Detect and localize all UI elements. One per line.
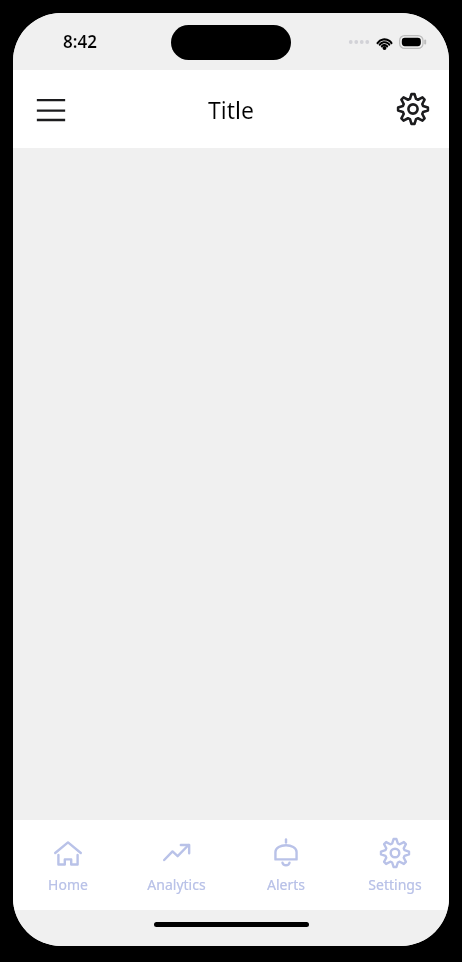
button[interactable]: Settings bbox=[340, 820, 449, 910]
button[interactable]: Settings bbox=[387, 83, 439, 135]
button[interactable]: Alerts bbox=[231, 820, 340, 910]
staticText: 8:42 bbox=[63, 30, 97, 53]
staticText: Home bbox=[48, 875, 88, 894]
staticText: Alerts bbox=[267, 875, 305, 894]
staticText: Settings bbox=[368, 875, 422, 894]
staticText: Analytics bbox=[147, 875, 206, 894]
button[interactable]: Analytics bbox=[122, 820, 231, 910]
button[interactable]: Menu bbox=[25, 83, 77, 135]
button[interactable]: Home bbox=[13, 820, 122, 910]
staticText: Title bbox=[208, 94, 254, 125]
